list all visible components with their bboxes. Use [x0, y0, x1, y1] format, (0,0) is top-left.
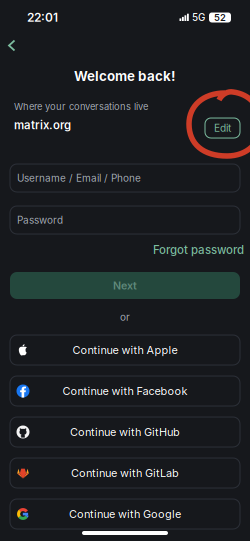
- button[interactable]: Edit: [205, 118, 240, 138]
- staticText: Password: [17, 214, 63, 226]
- staticText: Welcome back!: [74, 68, 176, 84]
- staticText: Forgot password: [153, 243, 244, 257]
- staticText: 52: [214, 12, 226, 23]
- button[interactable]: Password: [10, 206, 240, 234]
- staticText: 5G: [192, 11, 205, 23]
- button[interactable]: Username / Email / Phone: [10, 164, 240, 192]
- button[interactable]: Continue with Google: [10, 499, 240, 529]
- staticText: 22:01: [27, 10, 58, 25]
- staticText: Continue with GitHub: [70, 425, 180, 439]
- staticText: Where your conversations live: [14, 101, 148, 112]
- button[interactable]: Back: [0, 32, 25, 59]
- staticText: or: [120, 311, 130, 323]
- staticText: Continue with Google: [69, 507, 181, 521]
- button[interactable]: Next: [10, 272, 240, 299]
- staticText: Edit: [214, 122, 231, 134]
- button[interactable]: Continue with GitHub: [10, 417, 240, 447]
- staticText: Username / Email / Phone: [17, 172, 141, 184]
- button[interactable]: Forgot password: [153, 243, 244, 257]
- button[interactable]: Continue with Apple: [10, 335, 240, 365]
- staticText: matrix.org: [14, 118, 71, 132]
- button[interactable]: Continue with GitLab: [10, 458, 240, 488]
- button[interactable]: Continue with Facebook: [10, 376, 240, 406]
- staticText: Continue with GitLab: [71, 466, 179, 480]
- staticText: Next: [113, 279, 137, 292]
- staticText: Continue with Facebook: [62, 384, 187, 398]
- staticText: Continue with Apple: [72, 343, 177, 357]
